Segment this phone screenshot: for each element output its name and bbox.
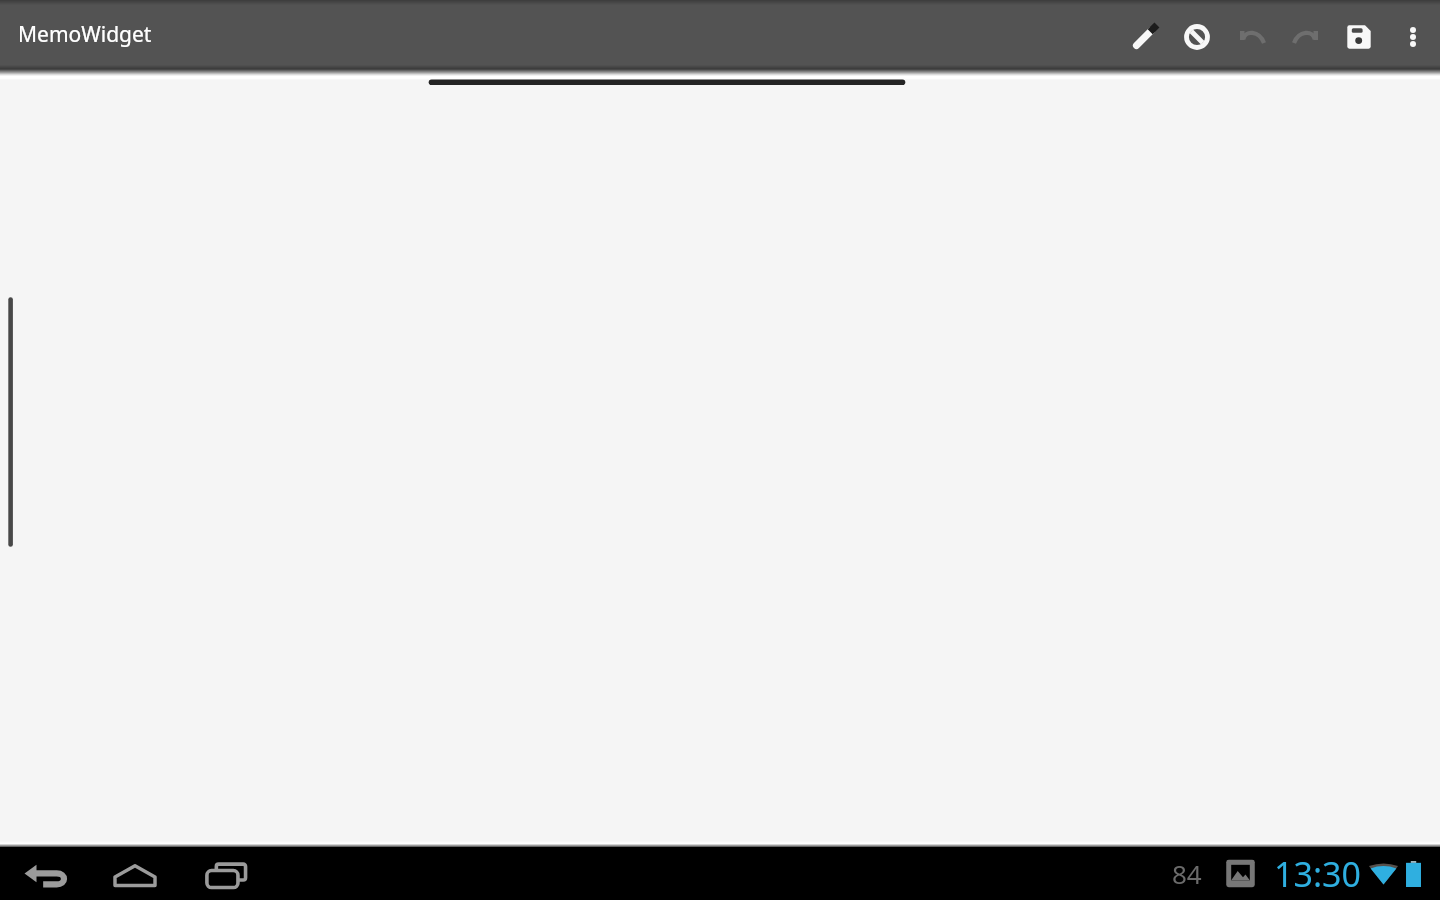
button[interactable]: Save [1332,0,1386,69]
button[interactable]: Undo [1225,0,1279,69]
staticText: 84 [1172,856,1202,891]
button[interactable]: Memo drawing canvas [0,0,1440,900]
button[interactable]: Recent apps [186,847,266,900]
button[interactable]: More options [1386,0,1440,69]
button[interactable]: Clear [1170,0,1224,69]
staticText: MemoWidget [18,20,152,49]
button[interactable]: Home [95,847,175,900]
button[interactable]: Redo [1279,0,1333,69]
button[interactable]: Status bar, 13:30, Wi-Fi connected, batt… [1160,847,1440,900]
button[interactable]: Draw [1118,0,1172,69]
staticText: 13:30 [1274,851,1361,897]
button[interactable]: Back [5,847,85,900]
